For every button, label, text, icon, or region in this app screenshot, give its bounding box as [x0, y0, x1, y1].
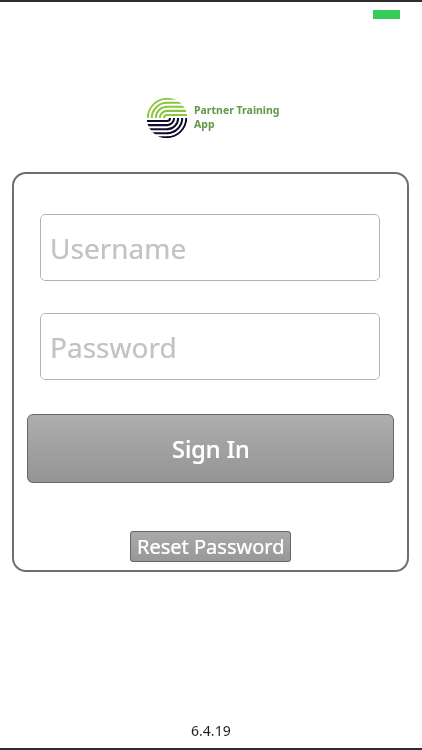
- staticText: Sign In: [172, 433, 250, 465]
- staticText: Username: [50, 229, 187, 267]
- staticText: Reset Password: [137, 533, 285, 560]
- staticText: App: [194, 117, 215, 131]
- staticText: Partner Training: [194, 103, 280, 117]
- button[interactable]: Reset Password: [130, 531, 291, 562]
- button[interactable]: Password: [40, 313, 380, 380]
- button[interactable]: Username: [40, 214, 380, 281]
- button[interactable]: Sign In: [27, 414, 394, 483]
- staticText: 6.4.19: [191, 721, 231, 740]
- staticText: Password: [50, 328, 177, 366]
- other: Partner Training App logo: [145, 96, 189, 140]
